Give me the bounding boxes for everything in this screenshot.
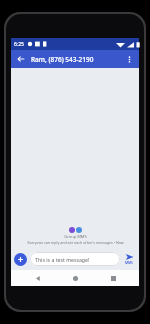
button[interactable]: Back	[15, 53, 27, 65]
staticText: Group MMS	[64, 234, 87, 239]
staticText: 6:25	[14, 41, 24, 48]
staticText: Ram, (876) 543-2190	[31, 55, 94, 64]
staticText: This is a test message!	[35, 256, 90, 263]
staticText: MMS	[125, 261, 133, 265]
button[interactable]: Home	[64, 270, 86, 286]
button[interactable]: More options	[123, 53, 135, 65]
button[interactable]: Back	[27, 270, 49, 286]
staticText: Everyone can reply and see each other's …	[27, 240, 124, 245]
button[interactable]: This is a test message!	[30, 252, 120, 266]
button[interactable]: Send MMS	[122, 253, 136, 265]
button[interactable]: Add attachment	[14, 253, 27, 266]
button[interactable]: Recent apps	[102, 270, 124, 286]
